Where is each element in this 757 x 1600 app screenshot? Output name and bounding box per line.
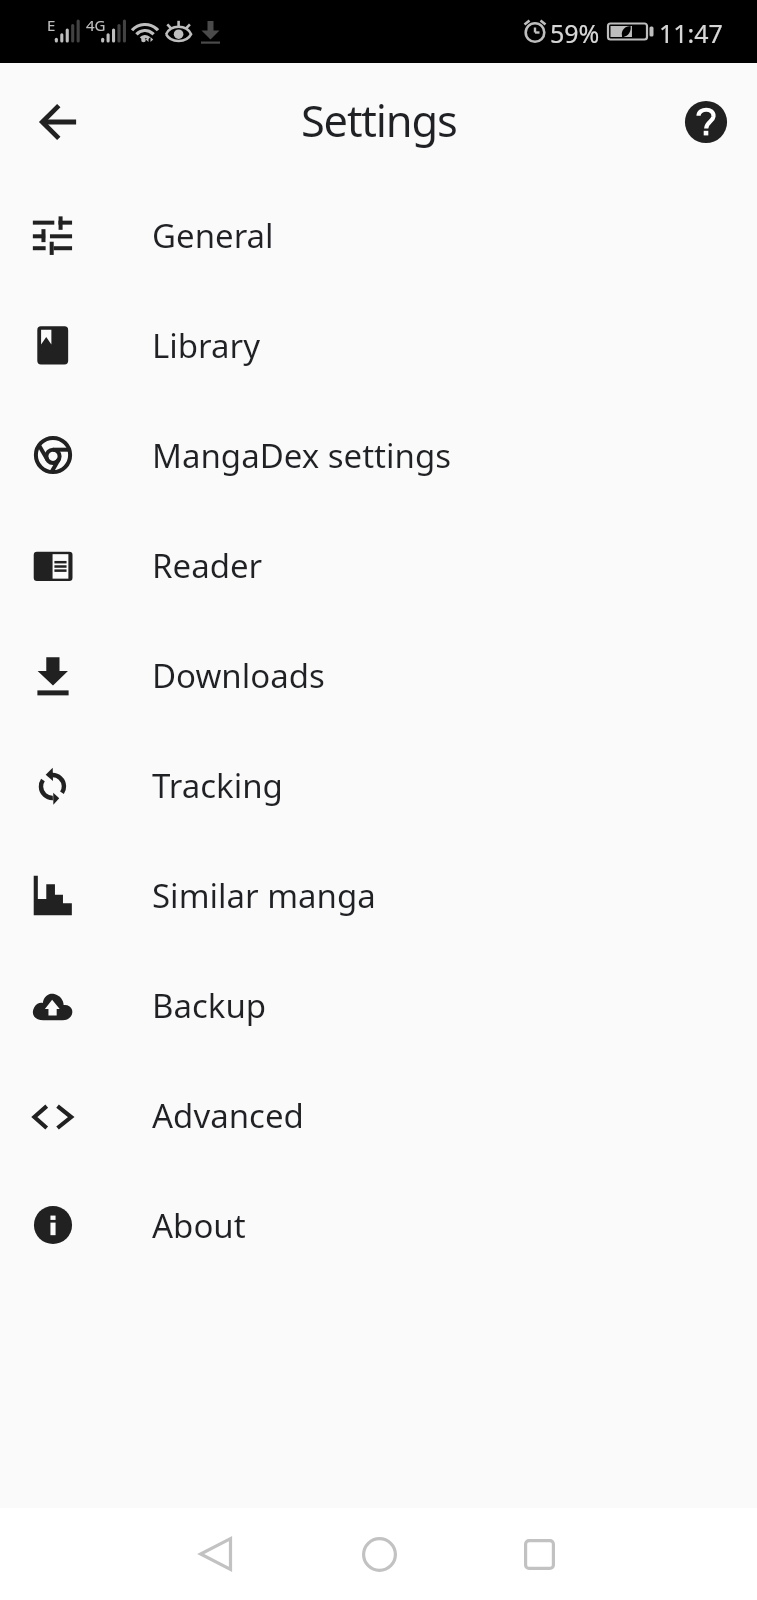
staticText: Backup: [152, 983, 267, 1028]
staticText: 59%: [550, 16, 600, 50]
button[interactable]: General: [0, 180, 757, 290]
staticText: MangaDex settings: [152, 433, 451, 478]
staticText: Downloads: [152, 653, 325, 698]
staticText: 11:47: [659, 16, 723, 50]
staticText: Settings: [301, 91, 457, 150]
button[interactable]: Downloads: [0, 620, 757, 730]
button[interactable]: MangaDex settings: [0, 400, 757, 510]
button[interactable]: Reader: [0, 510, 757, 620]
button[interactable]: About: [0, 1170, 757, 1280]
button[interactable]: Backup: [0, 950, 757, 1060]
button[interactable]: Back: [181, 1519, 251, 1589]
button[interactable]: Home: [344, 1519, 414, 1589]
staticText: About: [152, 1203, 246, 1248]
button[interactable]: Navigate up: [19, 82, 99, 162]
staticText: E: [47, 15, 56, 35]
button[interactable]: Similar manga: [0, 840, 757, 950]
staticText: Library: [152, 323, 261, 368]
staticText: 4G: [86, 15, 106, 35]
staticText: Tracking: [152, 763, 283, 808]
button[interactable]: Tracking: [0, 730, 757, 840]
button[interactable]: Recent apps: [504, 1519, 574, 1589]
button[interactable]: Help: [666, 82, 746, 162]
button[interactable]: Library: [0, 290, 757, 400]
button[interactable]: Advanced: [0, 1060, 757, 1170]
staticText: General: [152, 213, 274, 258]
staticText: Similar manga: [152, 873, 376, 918]
staticText: Reader: [152, 543, 263, 588]
staticText: Advanced: [152, 1093, 304, 1138]
